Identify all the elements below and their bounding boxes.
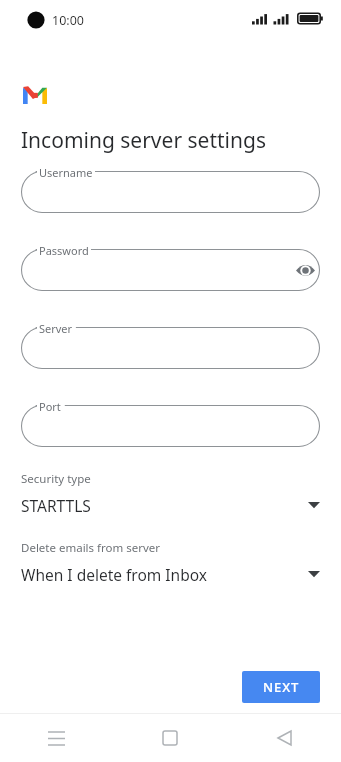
button[interactable]: Password bbox=[21, 249, 320, 291]
button[interactable]: NEXT bbox=[242, 671, 320, 703]
staticText: Delete emails from server bbox=[21, 540, 161, 556]
staticText: Username bbox=[39, 165, 93, 180]
button[interactable]: Username bbox=[21, 171, 320, 213]
staticText: Password bbox=[39, 243, 89, 258]
staticText: 10:00 bbox=[52, 12, 84, 29]
staticText: Port bbox=[39, 399, 61, 414]
staticText: Security type bbox=[21, 471, 91, 487]
staticText: Server bbox=[39, 321, 73, 336]
staticText: Incoming server settings bbox=[21, 126, 266, 155]
button[interactable]: Delete emails from server bbox=[21, 540, 320, 585]
staticText: NEXT bbox=[263, 678, 300, 696]
button[interactable]: Server bbox=[21, 327, 320, 369]
button[interactable]: Home bbox=[113, 714, 227, 762]
button[interactable]: Recents bbox=[0, 714, 113, 762]
button[interactable]: Show password bbox=[290, 255, 320, 285]
staticText: STARTTLS bbox=[21, 495, 91, 516]
button[interactable]: Back bbox=[227, 714, 341, 762]
staticText: When I delete from Inbox bbox=[21, 564, 207, 585]
button[interactable]: Security type bbox=[21, 471, 320, 516]
button[interactable]: Port bbox=[21, 405, 320, 447]
